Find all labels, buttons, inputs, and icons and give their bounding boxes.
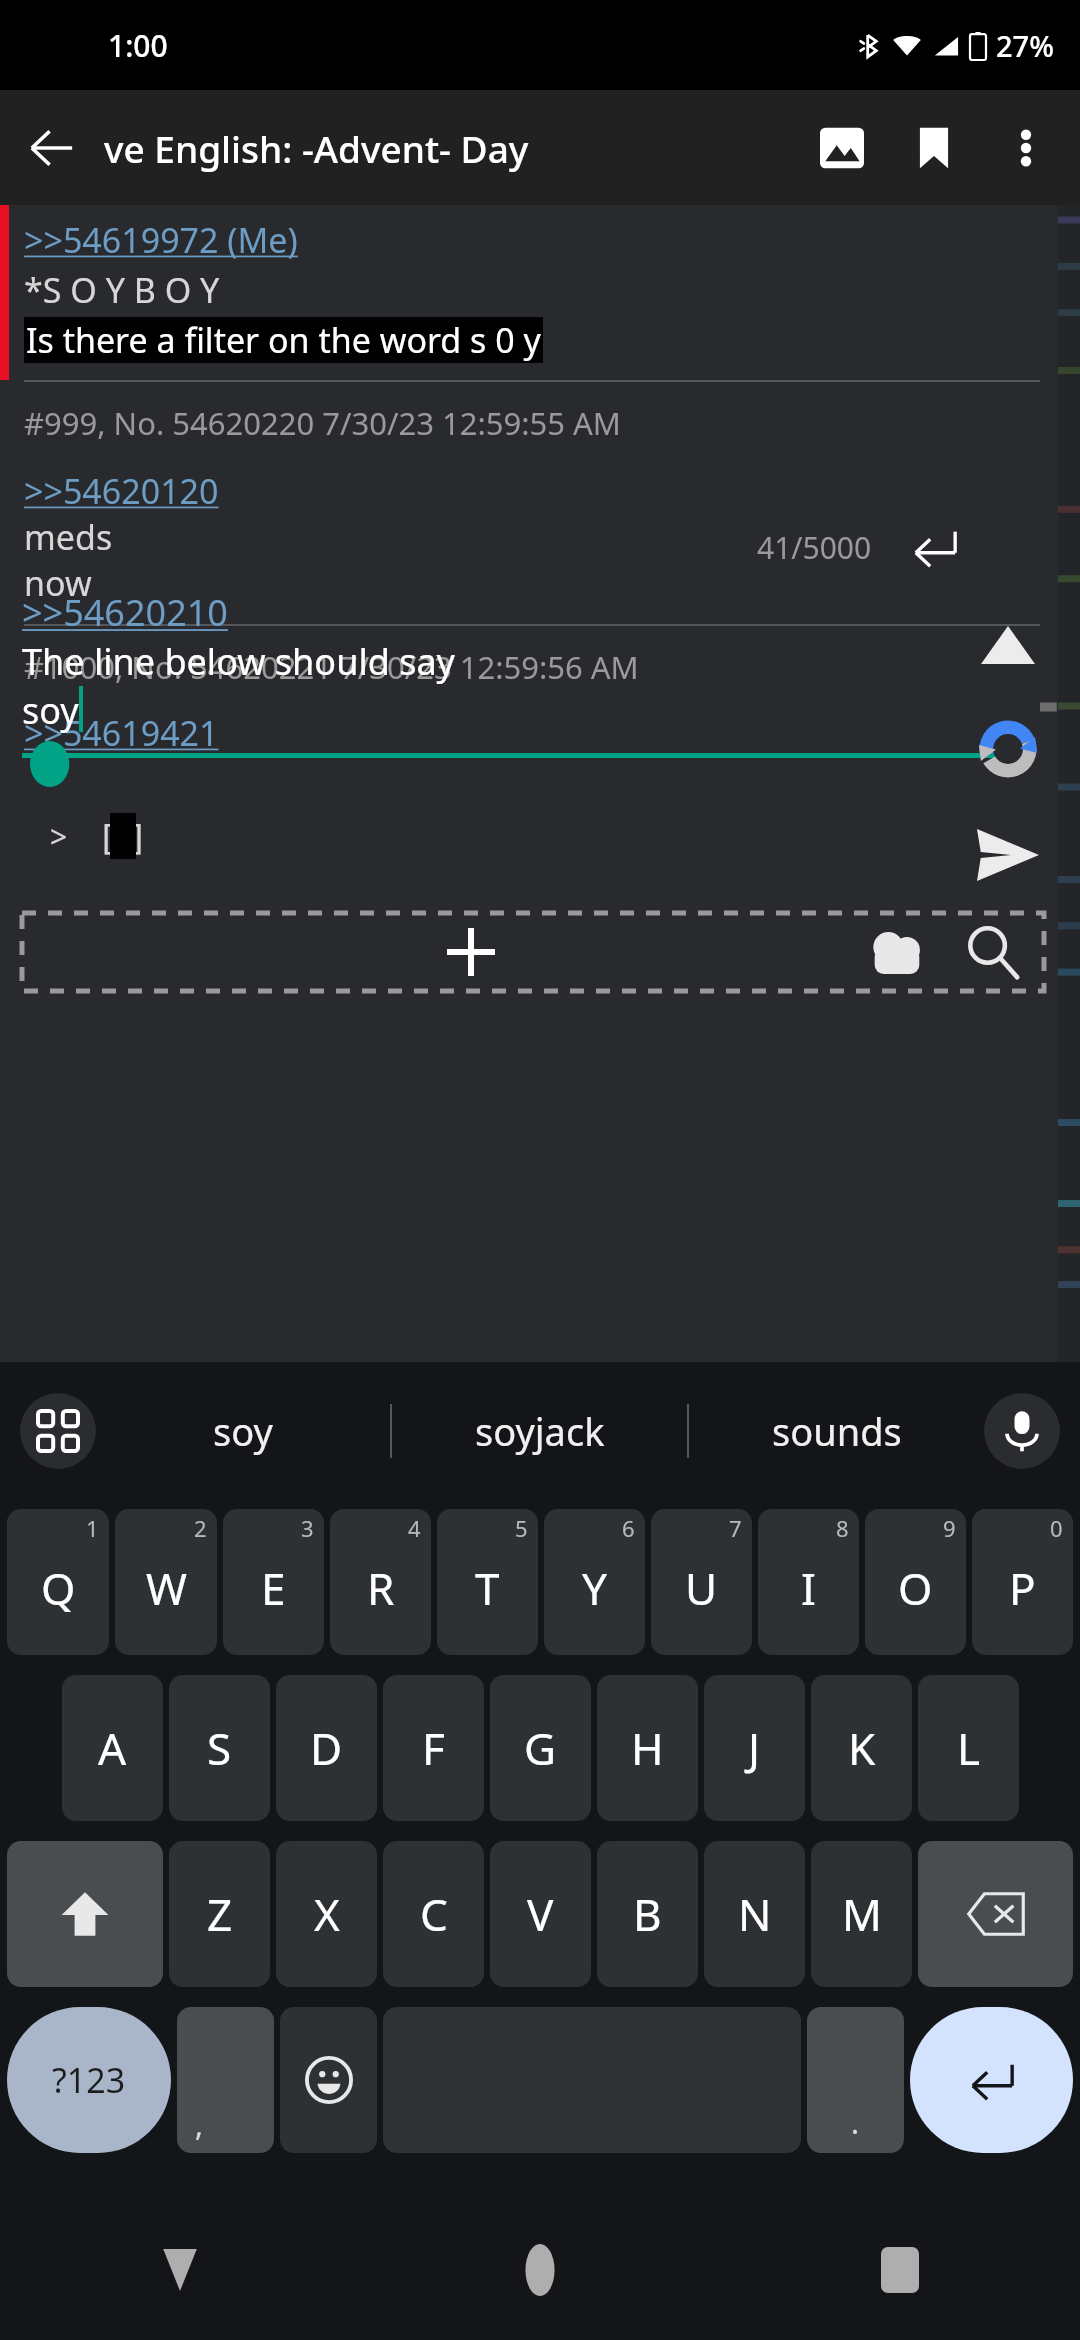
button[interactable]: 7 (651, 1509, 752, 1655)
button[interactable]: More options (980, 102, 1072, 194)
button[interactable]: sounds (689, 1362, 984, 1500)
button[interactable]: G (490, 1675, 591, 1821)
button[interactable]: soyjack (392, 1362, 687, 1500)
staticText: >>54620210 (22, 588, 228, 637)
button[interactable]: 1 (7, 1509, 109, 1655)
button[interactable]: Shift (7, 1841, 163, 1987)
button[interactable]: C (383, 1841, 484, 1987)
staticText: S (207, 1718, 232, 1778)
staticText: U (685, 1558, 718, 1618)
staticText: D (310, 1718, 343, 1778)
staticText: ] (132, 813, 144, 859)
button[interactable]: Search (954, 913, 1032, 991)
button[interactable]: Add attachment (22, 913, 1044, 991)
button[interactable]: Enter (910, 2007, 1073, 2153)
staticText: >>54619421 (24, 710, 219, 756)
staticText: R (367, 1558, 395, 1618)
staticText: 4 (408, 1513, 421, 1543)
button[interactable]: Backspace (918, 1841, 1073, 1987)
staticText: #999, No. 54620220 7/30/23 12:59:55 AM (24, 402, 621, 444)
button[interactable]: Voice input (984, 1393, 1060, 1469)
button[interactable]: H (597, 1675, 698, 1821)
button[interactable]: F (383, 1675, 484, 1821)
staticText: B (633, 1884, 662, 1944)
button[interactable]: S (169, 1675, 270, 1821)
button[interactable]: 0 (972, 1509, 1073, 1655)
button[interactable]: Download (858, 913, 936, 991)
button[interactable]: N (704, 1841, 805, 1987)
button[interactable]: 5 (437, 1509, 538, 1655)
staticText: 6 (622, 1513, 635, 1543)
staticText: A (98, 1718, 127, 1778)
button[interactable]: Emoji (280, 2007, 377, 2153)
staticText: Z (207, 1884, 233, 1944)
staticText: W (146, 1558, 187, 1618)
staticText: 3 (301, 1513, 314, 1543)
staticText: 41/5000 (757, 527, 872, 568)
staticText: Y (582, 1558, 607, 1618)
button[interactable]: 4 (330, 1509, 431, 1655)
button[interactable]: M (811, 1841, 912, 1987)
button[interactable]: Recents (720, 2200, 1080, 2340)
button[interactable]: Period (807, 2007, 904, 2153)
button[interactable]: Comma (177, 2007, 274, 2153)
staticText: now (24, 560, 92, 606)
staticText: *S O Y B O Y (24, 267, 220, 313)
staticText: H (631, 1718, 664, 1778)
staticText: soy (213, 1405, 273, 1457)
button[interactable]: Home (360, 2200, 720, 2340)
button[interactable]: V (490, 1841, 591, 1987)
staticText: ?123 (52, 2057, 126, 2103)
staticText: 2 (194, 1513, 207, 1543)
button[interactable]: soy (96, 1362, 390, 1500)
button[interactable]: J (704, 1675, 805, 1821)
staticText: 5 (515, 1513, 528, 1543)
staticText: E (261, 1558, 286, 1618)
button[interactable]: 6 (544, 1509, 645, 1655)
staticText: meds (24, 514, 113, 560)
button[interactable]: K (811, 1675, 912, 1821)
button[interactable]: Z (169, 1841, 270, 1987)
button[interactable]: 8 (758, 1509, 859, 1655)
button[interactable]: Toolbar (20, 1393, 96, 1469)
staticText: The line below should say (22, 637, 455, 686)
button[interactable]: B (597, 1841, 698, 1987)
button[interactable]: Images (796, 102, 888, 194)
button[interactable]: 3 (223, 1509, 324, 1655)
button[interactable]: 9 (865, 1509, 966, 1655)
staticText: G (524, 1718, 557, 1778)
staticText: 1:00 (108, 25, 168, 66)
staticText: sounds (772, 1405, 902, 1457)
staticText: Q (41, 1558, 76, 1618)
button[interactable]: L (918, 1675, 1019, 1821)
button[interactable]: X (276, 1841, 377, 1987)
staticText: 1 (86, 1513, 99, 1543)
staticText: L (957, 1718, 981, 1778)
button[interactable]: Back (0, 2200, 360, 2340)
staticText: >>54619972 (Me) (24, 217, 298, 263)
button[interactable]: Bookmark (888, 102, 980, 194)
button[interactable]: Scroll up (968, 605, 1048, 685)
button[interactable]: Add attachment (434, 915, 508, 989)
staticText: X (314, 1884, 340, 1944)
button[interactable]: D (276, 1675, 377, 1821)
button[interactable]: Back (0, 96, 104, 200)
staticText: 0 (1050, 1513, 1063, 1543)
staticText: ve English: -Advent- Day (104, 123, 790, 173)
button[interactable]: Send (968, 815, 1048, 895)
staticText: P (1009, 1558, 1036, 1618)
button[interactable]: Refresh (968, 709, 1048, 789)
staticText: 9 (943, 1513, 956, 1543)
staticText: Is there a filter on the word s 0 y (26, 317, 541, 363)
button[interactable]: A (62, 1675, 163, 1821)
button[interactable]: 2 (115, 1509, 217, 1655)
staticText: 7 (729, 1513, 742, 1543)
staticText: , (195, 2104, 204, 2145)
staticText: 8 (836, 1513, 849, 1543)
staticText: M (842, 1884, 882, 1944)
button[interactable]: ?123 (7, 2007, 171, 2153)
button[interactable]: New line (908, 520, 962, 574)
staticText: soyjack (475, 1405, 605, 1457)
staticText: N (738, 1884, 772, 1944)
